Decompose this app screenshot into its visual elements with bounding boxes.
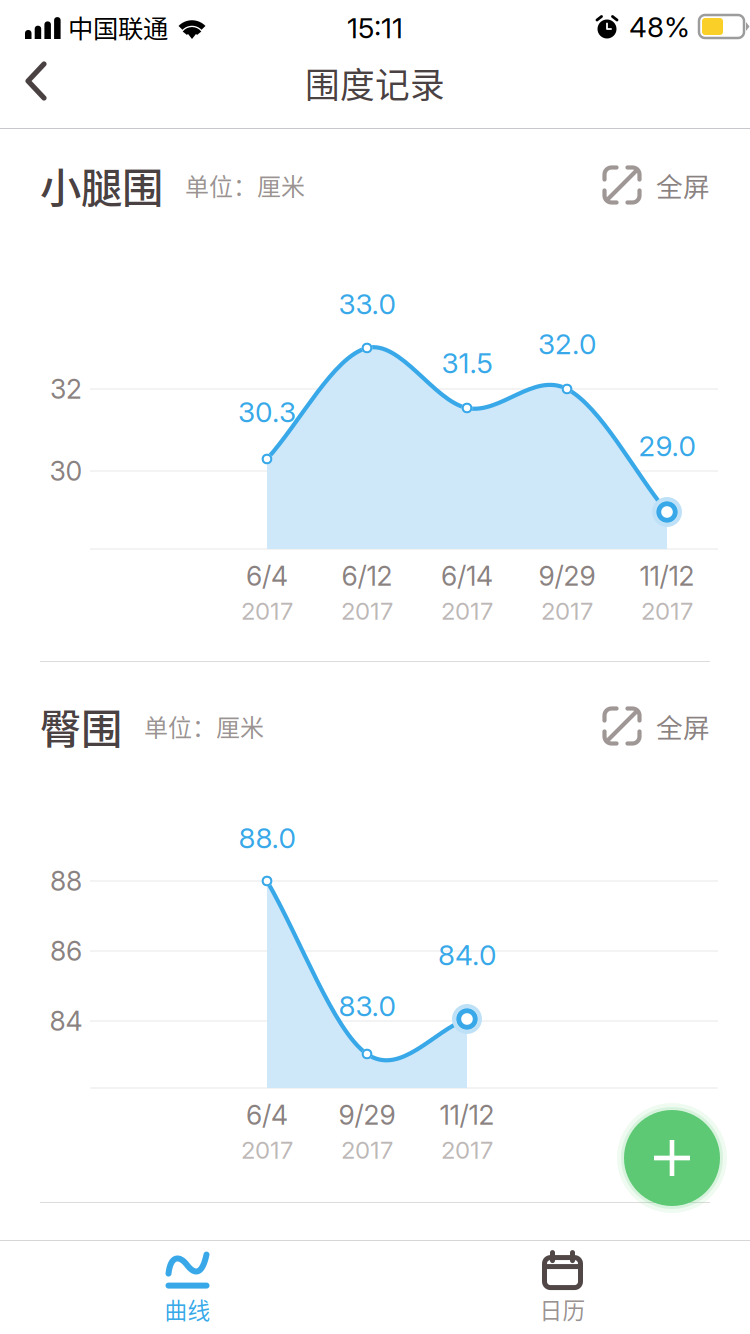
staticText: 围度记录: [305, 58, 445, 108]
staticText: 88: [50, 865, 82, 897]
staticText: 9/29: [338, 1099, 395, 1131]
staticText: 2017: [241, 596, 293, 625]
button[interactable]: 全屏: [602, 696, 710, 756]
staticText: 86: [50, 935, 82, 967]
staticText: 30: [49, 455, 82, 487]
staticText: 9/29: [538, 560, 595, 592]
staticText: 小腿围: [40, 155, 163, 215]
staticText: 83.0: [338, 989, 395, 1023]
staticText: 臀围: [40, 696, 122, 756]
button[interactable]: 日历: [375, 1241, 750, 1334]
staticText: 2017: [441, 596, 493, 625]
staticText: 31.5: [441, 346, 492, 380]
button[interactable]: 添加记录: [624, 1110, 720, 1206]
staticText: 曲线: [164, 1293, 210, 1325]
staticText: 30.3: [238, 395, 296, 429]
staticText: 88.0: [238, 821, 295, 855]
staticText: 2017: [341, 1135, 393, 1164]
staticText: 全屏: [656, 166, 710, 204]
staticText: 11/12: [439, 1099, 494, 1131]
staticText: 日历: [539, 1293, 585, 1325]
staticText: 2017: [541, 596, 593, 625]
staticText: 6/4: [246, 1099, 288, 1131]
staticText: 33.0: [338, 287, 395, 321]
staticText: 2017: [441, 1135, 493, 1164]
staticText: 32.0: [538, 327, 596, 361]
staticText: 32: [50, 373, 82, 405]
staticText: 全屏: [656, 707, 710, 745]
staticText: 15:11: [347, 11, 403, 45]
staticText: 单位：厘米: [144, 709, 264, 743]
staticText: 中国联通: [68, 9, 168, 45]
staticText: 29.0: [638, 429, 695, 463]
button[interactable]: 返回: [4, 51, 80, 111]
staticText: 48%: [629, 10, 690, 44]
staticText: 2017: [641, 596, 693, 625]
staticText: 11/12: [639, 560, 694, 592]
button[interactable]: 全屏: [602, 155, 710, 215]
staticText: 84: [49, 1005, 82, 1037]
staticText: 2017: [341, 596, 393, 625]
staticText: 6/12: [341, 560, 392, 592]
staticText: 6/14: [441, 560, 493, 592]
staticText: 2017: [241, 1135, 293, 1164]
staticText: 84.0: [438, 938, 496, 972]
button[interactable]: 曲线: [0, 1241, 375, 1334]
staticText: 6/4: [246, 560, 288, 592]
staticText: 单位：厘米: [185, 168, 305, 202]
